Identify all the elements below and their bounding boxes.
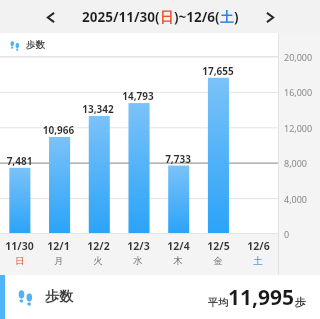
staticText: 12/5 (207, 239, 230, 253)
staticText: 12,000 (284, 122, 313, 134)
staticText: 歩数 (45, 288, 73, 306)
staticText: 日 (160, 9, 174, 26)
staticText: 木 (173, 255, 183, 267)
staticText: 17,655 (198, 64, 238, 78)
staticText: 7,733 (158, 152, 198, 166)
staticText: 4,000 (284, 193, 308, 205)
staticText: ) (234, 8, 239, 26)
staticText: 12/6 (247, 239, 270, 253)
staticText: 12/4 (167, 239, 190, 253)
button[interactable]: 次の週 (258, 5, 282, 29)
staticText: 7,481 (0, 154, 39, 168)
staticText: 11/30 (5, 239, 34, 253)
staticText: 平均 (208, 296, 228, 309)
staticText: 水 (133, 255, 143, 267)
staticText: 金 (213, 255, 223, 267)
staticText: 10,966 (39, 123, 78, 137)
staticText: 2025/11/30( (82, 8, 160, 26)
staticText: 日 (15, 255, 25, 267)
staticText: 12/3 (127, 239, 150, 253)
staticText: 12/1 (47, 239, 70, 253)
button[interactable]: 前の週 (38, 5, 62, 29)
staticText: 13,342 (78, 102, 118, 116)
staticText: 11,995 (228, 283, 295, 312)
staticText: 16,000 (284, 86, 313, 98)
staticText: 土 (253, 255, 263, 267)
staticText: 8,000 (284, 157, 308, 169)
button[interactable]: 歩数 (0, 275, 320, 319)
staticText: )~12/6( (174, 8, 220, 26)
staticText: 14,793 (118, 89, 158, 103)
staticText: 月 (54, 255, 64, 267)
staticText: 土 (220, 9, 234, 26)
staticText: 歩 (295, 295, 306, 309)
staticText: 0 (284, 228, 290, 240)
staticText: 12/2 (87, 239, 110, 253)
staticText: 20,000 (284, 51, 313, 63)
staticText: 火 (93, 255, 103, 267)
staticText: 歩数 (26, 39, 45, 51)
